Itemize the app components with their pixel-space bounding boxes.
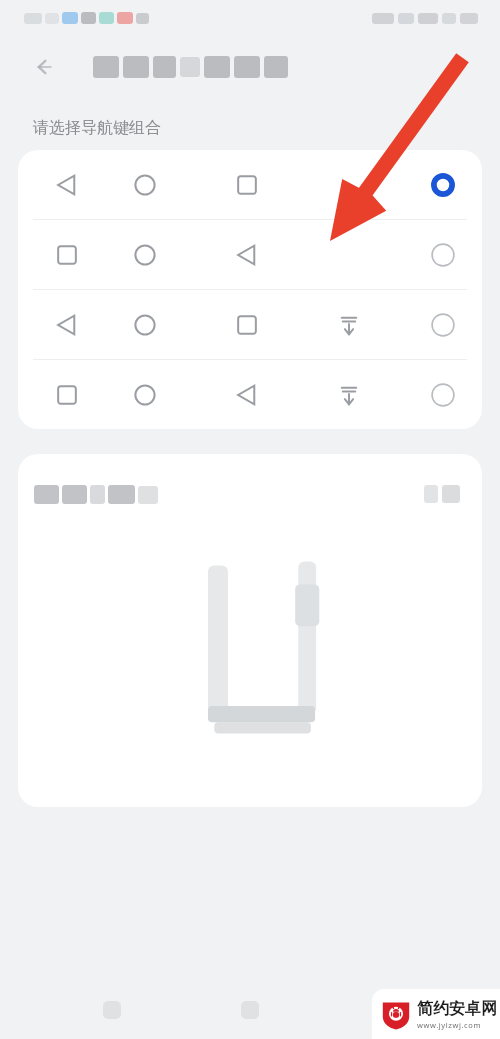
staticText: 简约安卓网	[417, 999, 497, 1019]
button[interactable]	[18, 290, 482, 359]
button[interactable]: Back	[85, 983, 139, 1037]
button[interactable]	[18, 150, 482, 219]
staticText: www.jylzwj.com	[417, 1020, 482, 1030]
staticText: 请选择导航键组合	[33, 118, 161, 138]
button[interactable]	[18, 454, 482, 807]
button[interactable]	[18, 360, 482, 429]
button[interactable]: Back	[22, 45, 66, 89]
button[interactable]: Recents	[362, 983, 416, 1037]
button[interactable]: Home	[223, 983, 277, 1037]
button[interactable]	[18, 220, 482, 289]
